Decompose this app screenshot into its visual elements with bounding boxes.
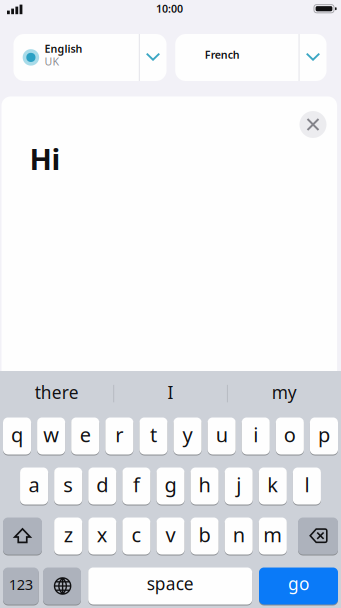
staticText: m [263, 521, 282, 548]
button[interactable]: e [71, 417, 99, 454]
staticText: v [165, 521, 175, 548]
staticText: q [11, 421, 23, 448]
staticText: h [199, 471, 211, 498]
staticText: u [216, 421, 228, 448]
button[interactable]: d [88, 467, 116, 504]
staticText: o [284, 421, 296, 448]
staticText: English [45, 41, 83, 56]
button[interactable]: Shift [3, 517, 42, 554]
staticText: UK [45, 54, 60, 68]
staticText: French [205, 48, 240, 62]
staticText: r [115, 421, 123, 448]
button[interactable]: k [259, 467, 287, 504]
button[interactable]: my [232, 376, 337, 409]
button[interactable]: s [54, 467, 82, 504]
staticText: d [96, 471, 108, 498]
staticText: I [167, 381, 173, 404]
staticText: w [43, 421, 59, 448]
staticText: x [97, 521, 108, 548]
staticText: f [133, 471, 140, 498]
button[interactable]: c [122, 517, 150, 554]
staticText: t [150, 421, 157, 448]
button[interactable]: i [242, 417, 270, 454]
button[interactable]: f [122, 467, 150, 504]
button[interactable]: English [13, 34, 166, 81]
button[interactable]: u [208, 417, 236, 454]
staticText: y [183, 421, 193, 448]
button[interactable]: j [225, 467, 253, 504]
staticText: s [63, 471, 73, 498]
staticText: Hi [29, 139, 60, 178]
button[interactable]: l [293, 467, 321, 504]
staticText: there [35, 381, 79, 404]
button[interactable]: a [20, 467, 48, 504]
button[interactable]: I [118, 376, 223, 409]
button[interactable]: x [88, 517, 116, 554]
staticText: i [253, 421, 258, 448]
button[interactable]: z [54, 517, 82, 554]
button[interactable]: French [175, 34, 326, 81]
button[interactable]: Clear text [299, 111, 326, 138]
button[interactable]: v [156, 517, 185, 554]
button[interactable]: t [139, 417, 167, 454]
staticText: go [288, 572, 309, 595]
button[interactable]: p [310, 417, 338, 454]
button[interactable]: q [3, 417, 31, 454]
button[interactable]: Delete [298, 517, 338, 554]
staticText: l [304, 471, 309, 498]
button[interactable]: h [191, 467, 219, 504]
staticText: space [147, 572, 194, 595]
staticText: my [272, 381, 297, 404]
button[interactable]: space [88, 567, 252, 604]
staticText: k [267, 471, 278, 498]
staticText: n [233, 521, 245, 548]
staticText: g [164, 471, 176, 498]
staticText: 10:00 [156, 1, 183, 16]
staticText: j [236, 471, 241, 498]
staticText: a [29, 471, 40, 498]
button[interactable]: y [173, 417, 202, 454]
button[interactable]: n [225, 517, 253, 554]
staticText: z [64, 521, 73, 548]
button[interactable]: there [4, 376, 109, 409]
staticText: 123 [9, 575, 33, 594]
button[interactable]: m [259, 517, 287, 554]
button[interactable]: o [276, 417, 304, 454]
staticText: p [318, 421, 330, 448]
staticText: c [131, 521, 141, 548]
staticText: e [80, 421, 91, 448]
button[interactable]: g [156, 467, 185, 504]
button[interactable]: r [105, 417, 133, 454]
button[interactable]: w [37, 417, 65, 454]
button[interactable]: b [191, 517, 219, 554]
button[interactable]: go [259, 567, 338, 604]
button[interactable]: Numbers [3, 567, 39, 604]
staticText: b [199, 521, 211, 548]
button[interactable]: Next keyboard [43, 567, 81, 604]
